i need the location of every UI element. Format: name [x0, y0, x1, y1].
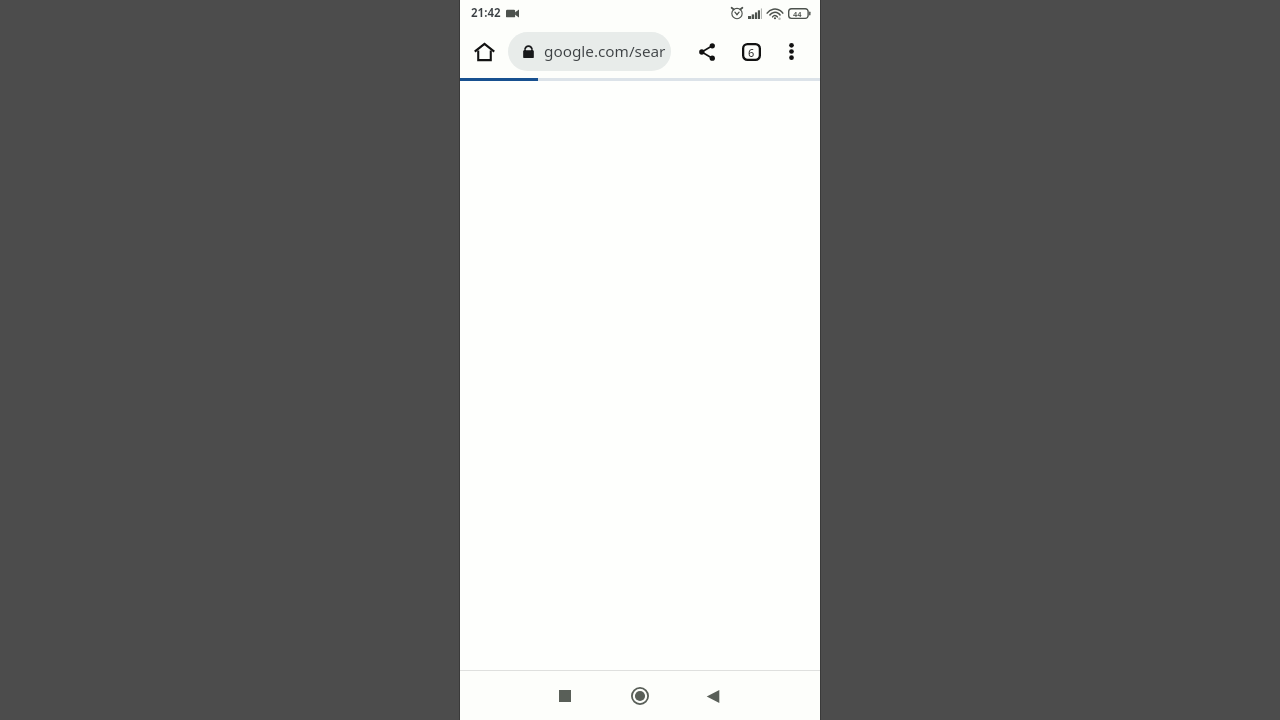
staticText: 44 — [793, 9, 802, 19]
staticText: 21:42 — [471, 5, 501, 21]
button[interactable]: Share — [690, 35, 723, 68]
button[interactable]: Back — [691, 674, 735, 718]
staticText: 6 — [748, 45, 755, 60]
button[interactable]: More options — [775, 35, 808, 68]
button[interactable]: Search or type URL — [508, 32, 671, 71]
button[interactable]: Switch tabs, 6 open — [735, 35, 768, 68]
button[interactable]: Recent apps — [543, 674, 587, 718]
button[interactable]: Home — [466, 34, 502, 70]
button[interactable]: Home — [618, 674, 662, 718]
staticText: google.com/sear — [544, 41, 666, 62]
